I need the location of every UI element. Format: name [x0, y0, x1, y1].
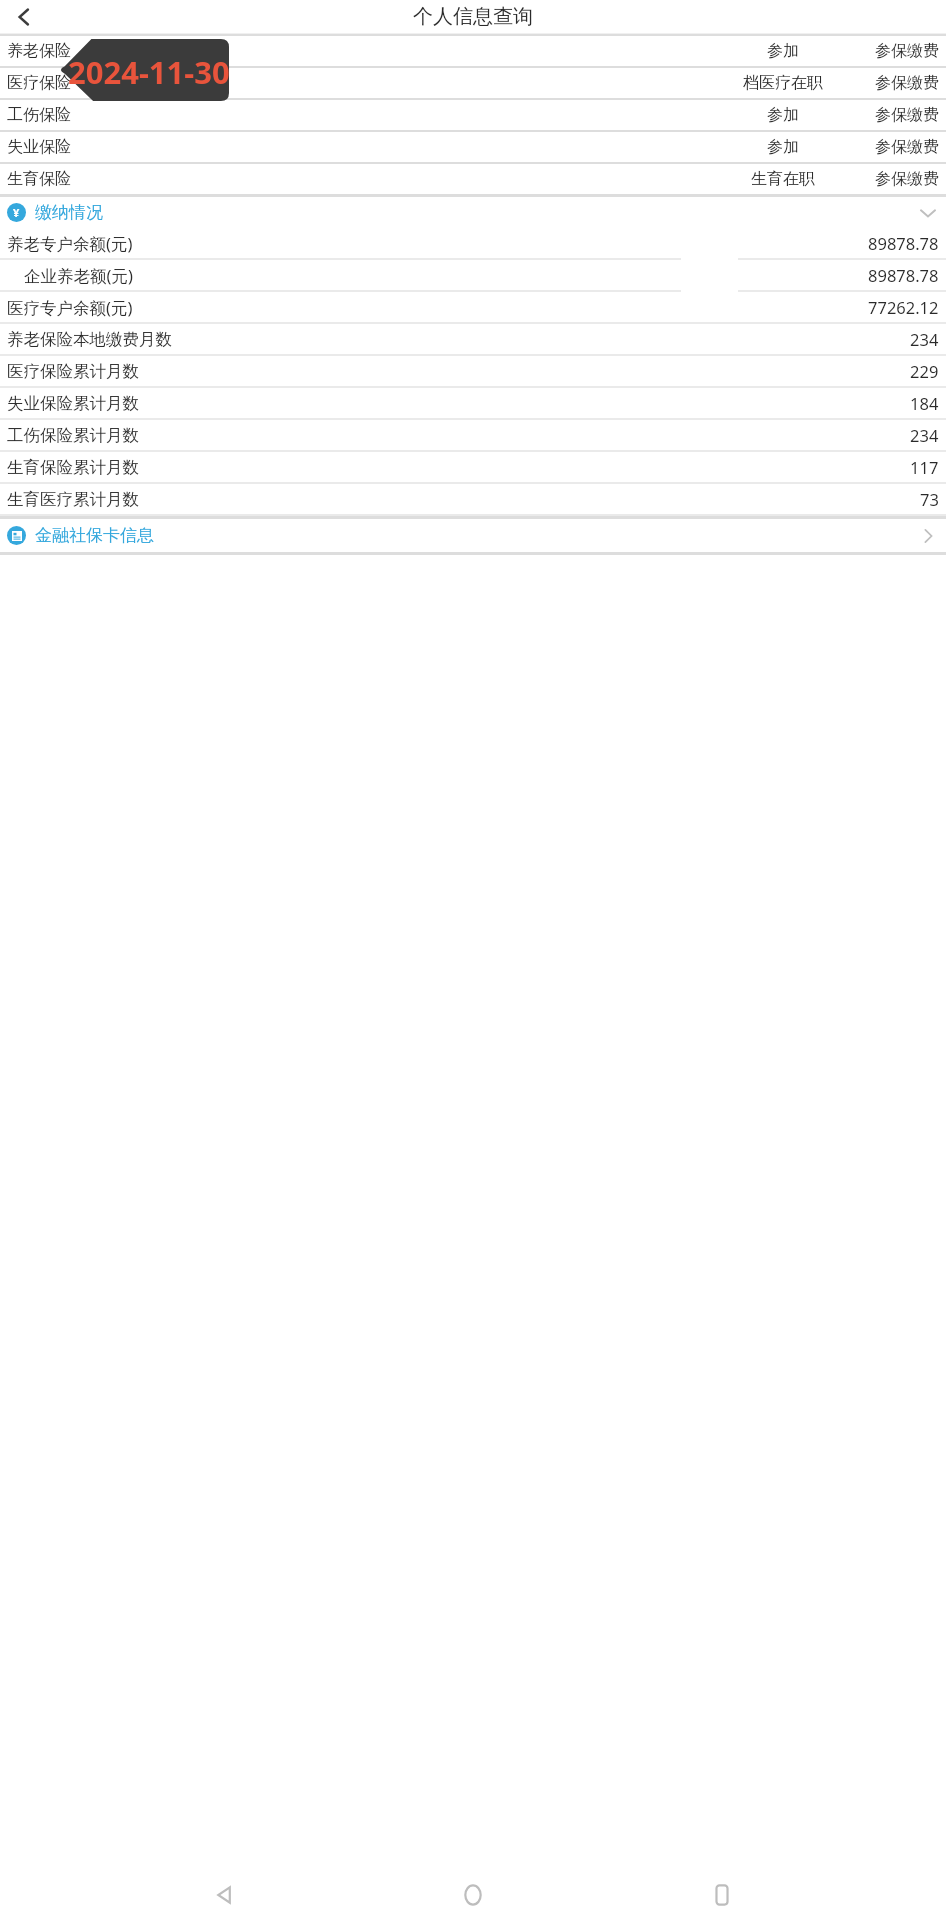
staticText: 73 — [920, 488, 939, 510]
staticText: 医疗专户余额(元) — [7, 296, 133, 319]
button[interactable]: Home — [449, 1871, 497, 1919]
staticText: 养老保险本地缴费月数 — [7, 329, 172, 350]
staticText: 工伤保险 — [7, 105, 71, 125]
staticText: 生育保险累计月数 — [7, 457, 139, 478]
staticText: 参加 — [723, 41, 843, 61]
staticText: 养老保险 — [7, 41, 71, 61]
button[interactable]: 失业保险 — [0, 132, 946, 162]
staticText: 参加 — [723, 137, 843, 157]
button[interactable]: Back — [201, 1871, 249, 1919]
button[interactable]: 生育保险 — [0, 164, 946, 194]
staticText: 生育保险 — [7, 169, 71, 189]
staticText: 184 — [910, 392, 939, 414]
staticText: 生育医疗累计月数 — [7, 489, 139, 510]
button[interactable]: 工伤保险 — [0, 100, 946, 130]
staticText: 缴纳情况 — [35, 202, 103, 223]
staticText: ¥ — [13, 205, 20, 220]
staticText: 234 — [910, 424, 939, 446]
staticText: 工伤保险累计月数 — [7, 425, 139, 446]
staticText: 失业保险 — [7, 137, 71, 157]
button[interactable]: Recents — [698, 1871, 746, 1919]
staticText: 参加 — [723, 105, 843, 125]
button[interactable]: 金融社保卡信息 — [0, 519, 946, 552]
staticText: 89878.78 — [868, 232, 939, 254]
button[interactable]: 医疗保险累计月数 — [0, 356, 946, 386]
staticText: 养老专户余额(元) — [7, 232, 133, 255]
staticText: 医疗保险 — [7, 73, 71, 93]
staticText: 参保缴费 — [857, 105, 939, 125]
staticText: 企业养老额(元) — [24, 264, 133, 287]
staticText: 参保缴费 — [857, 73, 939, 93]
button[interactable]: 医疗保险 — [0, 68, 946, 98]
staticText: 77262.12 — [868, 296, 939, 318]
button[interactable]: 失业保险累计月数 — [0, 388, 946, 418]
button[interactable]: 养老保险本地缴费月数 — [0, 324, 946, 354]
staticText: 参保缴费 — [857, 137, 939, 157]
button[interactable]: 工伤保险累计月数 — [0, 420, 946, 450]
button[interactable]: 生育医疗累计月数 — [0, 484, 946, 514]
staticText: 档医疗在职 — [723, 73, 843, 93]
staticText: 医疗保险累计月数 — [7, 361, 139, 382]
staticText: 89878.78 — [868, 264, 939, 286]
staticText: 生育在职 — [723, 169, 843, 189]
staticText: 229 — [910, 360, 939, 382]
staticText: 234 — [910, 328, 939, 350]
staticText: 个人信息查询 — [413, 4, 533, 29]
staticText: 117 — [910, 456, 939, 478]
button[interactable]: 医疗专户余额(元) — [0, 292, 946, 322]
staticText: 参保缴费 — [857, 41, 939, 61]
staticText: 参保缴费 — [857, 169, 939, 189]
button[interactable]: ¥ — [0, 197, 946, 228]
staticText: 金融社保卡信息 — [35, 525, 154, 546]
button[interactable]: 生育保险累计月数 — [0, 452, 946, 482]
staticText: 2024-11-30 — [68, 51, 230, 93]
button[interactable]: 企业养老额(元) — [0, 260, 946, 290]
button[interactable]: 养老专户余额(元) — [0, 228, 946, 258]
button[interactable]: 养老保险 — [0, 36, 946, 66]
button[interactable]: Back — [4, 0, 44, 33]
staticText: 失业保险累计月数 — [7, 393, 139, 414]
